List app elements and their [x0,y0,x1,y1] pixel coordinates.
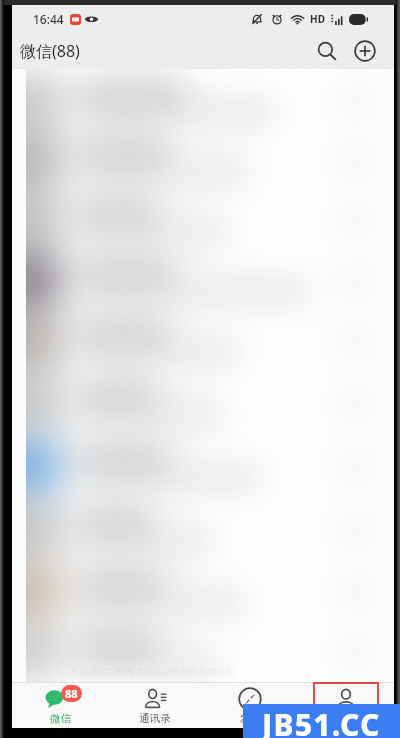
staticText: 微信 [50,712,71,725]
button[interactable]: 88 [12,683,107,728]
staticText: HD [310,12,325,26]
staticText: JB51.CC [262,704,381,738]
button[interactable]: 通讯录 [107,683,202,728]
button[interactable]: Add [348,34,382,68]
staticText: 长按识别二维码,关注公众号即可免费领取 [70,665,235,677]
staticText: 通讯录 [139,712,171,725]
button[interactable]: 我 [298,683,394,728]
staticText: 16:44 [33,11,64,27]
button[interactable]: Search [310,34,344,68]
staticText: 88 [65,686,78,701]
staticText: 微信(88) [20,40,80,62]
staticText: 我 [341,712,352,725]
button[interactable]: 发现 [202,683,298,728]
staticText: 发现 [240,712,261,725]
